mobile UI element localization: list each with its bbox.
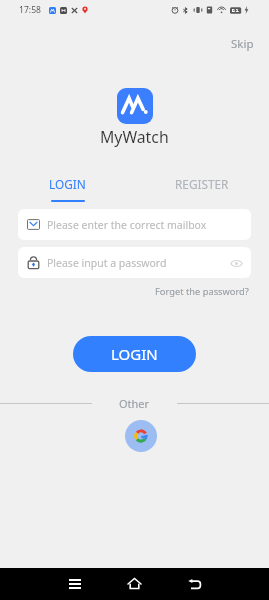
button[interactable]: Forget the password? [147, 282, 257, 301]
button[interactable]: Sign in with Google [125, 420, 157, 452]
staticText: Other [119, 396, 150, 411]
staticText: Please input a password [47, 256, 167, 270]
button[interactable]: Skip [220, 31, 265, 57]
staticText: Forget the password? [155, 285, 249, 298]
button[interactable]: REGISTER [134, 176, 269, 206]
staticText: LOGIN [49, 176, 86, 192]
staticText: Please enter the correct mailbox [47, 218, 207, 232]
staticText: LOGIN [111, 344, 158, 364]
staticText: 17:58 [19, 4, 41, 16]
staticText: MyWatch [100, 126, 169, 148]
staticText: REGISTER [175, 176, 229, 192]
button[interactable]: Show password [227, 254, 245, 272]
button[interactable]: LOGIN [0, 176, 134, 206]
button[interactable]: Recents [45, 568, 104, 600]
button[interactable]: Home [104, 568, 164, 600]
button[interactable]: Please enter the correct mailbox [18, 209, 251, 240]
staticText: Skip [231, 36, 254, 52]
button[interactable]: LOGIN [73, 336, 196, 372]
button[interactable]: Back [164, 568, 224, 600]
button[interactable]: Please input a password [18, 247, 251, 278]
